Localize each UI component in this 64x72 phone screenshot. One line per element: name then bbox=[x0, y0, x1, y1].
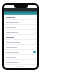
button[interactable] bbox=[4, 60, 37, 65]
button[interactable] bbox=[4, 45, 37, 50]
button[interactable] bbox=[4, 25, 37, 30]
button[interactable] bbox=[4, 30, 37, 35]
other: Toggle bbox=[33, 51, 36, 53]
button[interactable] bbox=[4, 20, 37, 25]
button[interactable] bbox=[4, 40, 37, 45]
button[interactable]: Toggle bbox=[4, 50, 37, 55]
button[interactable] bbox=[4, 35, 37, 40]
button[interactable] bbox=[4, 15, 37, 20]
button[interactable] bbox=[4, 55, 37, 60]
